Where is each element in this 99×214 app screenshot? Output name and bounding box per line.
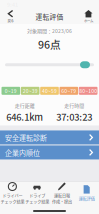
staticText: ホーム — [84, 18, 93, 23]
staticText: 走行距離 — [15, 102, 35, 109]
staticText: 安全運転診断 — [5, 132, 47, 142]
staticText: 戻る — [7, 18, 13, 23]
staticText: 20~39 — [23, 87, 38, 94]
staticText: 80~100 — [79, 87, 97, 94]
staticText: 企業内順位 — [5, 147, 40, 157]
staticText: 646.1km — [6, 110, 43, 123]
button[interactable]: 運転評価 — [74, 182, 99, 208]
staticText: 対象期間：2023/06 — [27, 27, 72, 34]
staticText: 60~79 — [61, 87, 76, 94]
staticText: 運転評価 — [79, 196, 95, 202]
staticText: 運転日報 — [54, 193, 70, 199]
button[interactable]: ドライブチェック結果 — [25, 182, 50, 208]
staticText: チェック結果 — [25, 199, 49, 205]
button[interactable]: ホーム — [80, 9, 96, 24]
staticText: ドライバー — [2, 193, 22, 199]
button[interactable]: 企業内順位 — [0, 145, 99, 159]
staticText: 37:03:23 — [56, 110, 92, 123]
button[interactable]: 運転日報作成・提出 — [49, 182, 74, 208]
staticText: 40~59 — [42, 87, 57, 94]
staticText: 走行時間 — [64, 102, 84, 109]
staticText: 96点 — [38, 36, 61, 52]
staticText: ドライブ — [29, 193, 45, 199]
staticText: チェック結果 — [0, 199, 24, 205]
staticText: 作成・提出 — [52, 199, 72, 205]
staticText: 0~19 — [5, 87, 17, 94]
button[interactable]: 戻る — [2, 9, 18, 24]
staticText: 運転評価 — [35, 12, 63, 21]
button[interactable]: 安全運転診断 — [0, 130, 99, 144]
button[interactable]: ドライバーチェック結果 — [0, 182, 25, 208]
